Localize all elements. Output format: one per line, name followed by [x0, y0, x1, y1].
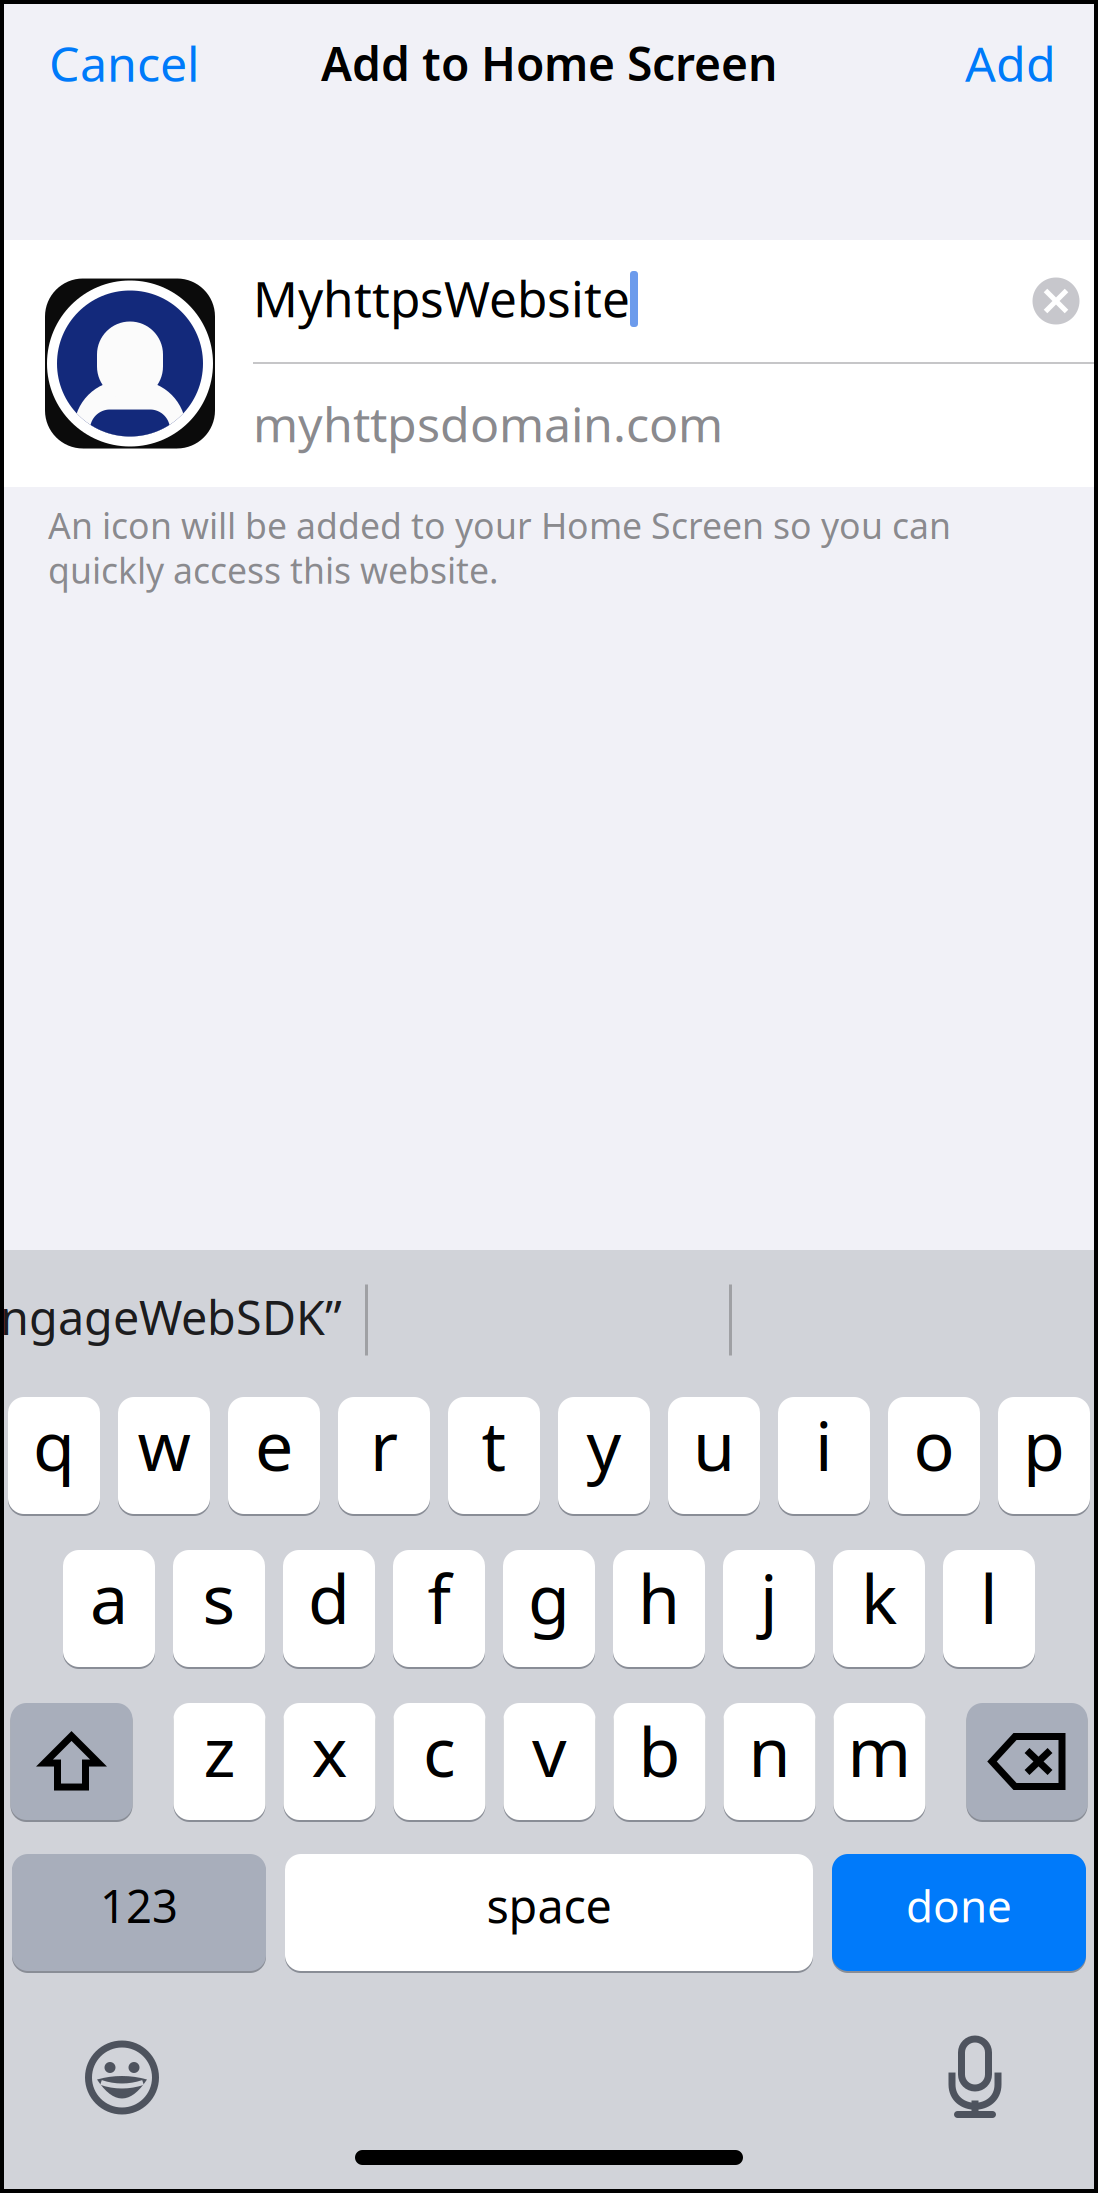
- staticText: 123: [100, 1875, 178, 1936]
- button[interactable]: Shift: [10, 1702, 132, 1821]
- staticText: d: [308, 1551, 350, 1644]
- button[interactable]: q: [8, 1396, 100, 1515]
- button[interactable]: Dictation: [926, 2021, 1024, 2145]
- staticText: Add to Home Screen: [321, 32, 777, 94]
- staticText: myhttpsdomain.com: [253, 391, 723, 456]
- button[interactable]: f: [393, 1549, 485, 1668]
- button[interactable]: t: [448, 1396, 540, 1515]
- staticText: e: [255, 1398, 293, 1491]
- button[interactable]: b: [613, 1702, 705, 1821]
- button[interactable]: d: [283, 1549, 375, 1668]
- staticText: x: [311, 1704, 347, 1797]
- button[interactable]: y: [558, 1396, 650, 1515]
- button[interactable]: c: [393, 1702, 485, 1821]
- staticText: v: [532, 1704, 567, 1797]
- staticText: a: [90, 1551, 128, 1644]
- button[interactable]: Cancel: [4, 10, 225, 116]
- staticText: done: [906, 1875, 1012, 1935]
- button[interactable]: s: [173, 1549, 265, 1668]
- button[interactable]: r: [338, 1396, 430, 1515]
- staticText: Cancel: [49, 30, 199, 96]
- staticText: b: [638, 1704, 680, 1797]
- button[interactable]: h: [613, 1549, 705, 1668]
- button[interactable]: 123: [12, 1853, 266, 1972]
- button[interactable]: i: [778, 1396, 870, 1515]
- staticText: MyhttpsWebsite: [253, 264, 630, 332]
- staticText: j: [760, 1551, 778, 1644]
- staticText: q: [33, 1398, 75, 1491]
- button[interactable]: Add: [939, 10, 1094, 116]
- staticText: k: [861, 1551, 897, 1644]
- staticText: s: [202, 1551, 235, 1644]
- button[interactable]: Emoji: [68, 2026, 182, 2140]
- button[interactable]: m: [833, 1702, 925, 1821]
- button[interactable]: p: [998, 1396, 1090, 1515]
- button[interactable]: u: [668, 1396, 760, 1515]
- button[interactable]: k: [833, 1549, 925, 1668]
- button[interactable]: space: [285, 1853, 813, 1972]
- button[interactable]: g: [503, 1549, 595, 1668]
- button[interactable]: Clear text: [1018, 256, 1094, 346]
- button[interactable]: e: [228, 1396, 320, 1515]
- staticText: h: [638, 1551, 680, 1644]
- staticText: g: [528, 1551, 570, 1644]
- button[interactable]: n: [723, 1702, 815, 1821]
- staticText: Add: [965, 30, 1056, 96]
- staticText: o: [913, 1398, 954, 1491]
- button[interactable]: j: [723, 1549, 815, 1668]
- button[interactable]: z: [173, 1702, 265, 1821]
- staticText: p: [1023, 1398, 1065, 1491]
- button[interactable]: a: [63, 1549, 155, 1668]
- staticText: i: [815, 1398, 833, 1491]
- staticText: r: [370, 1398, 398, 1491]
- staticText: u: [693, 1398, 735, 1491]
- button[interactable]: done: [832, 1853, 1086, 1972]
- button[interactable]: Delete: [966, 1702, 1087, 1821]
- staticText: n: [748, 1704, 790, 1797]
- staticText: l: [980, 1551, 998, 1644]
- staticText: z: [203, 1704, 235, 1797]
- button[interactable]: o: [888, 1396, 980, 1515]
- staticText: c: [423, 1704, 456, 1797]
- staticText: f: [427, 1551, 450, 1644]
- button[interactable]: x: [283, 1702, 375, 1821]
- staticText: ngageWebSDK”: [0, 1285, 342, 1349]
- staticText: w: [137, 1398, 190, 1491]
- button[interactable]: w: [118, 1396, 210, 1515]
- staticText: m: [847, 1704, 911, 1797]
- staticText: y: [586, 1398, 621, 1491]
- staticText: space: [486, 1874, 611, 1937]
- button[interactable]: l: [943, 1549, 1035, 1668]
- staticText: An icon will be added to your Home Scree…: [48, 503, 951, 592]
- button[interactable]: v: [503, 1702, 595, 1821]
- staticText: t: [481, 1398, 506, 1491]
